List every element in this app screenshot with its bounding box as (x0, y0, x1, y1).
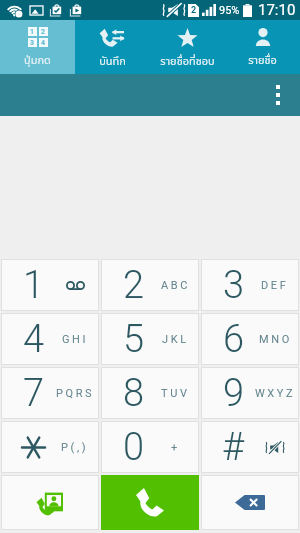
button[interactable]: P(,) (2, 422, 98, 472)
staticText: บันทึก (99, 53, 126, 68)
staticText: 6 (223, 317, 245, 362)
staticText: P(,) (61, 441, 89, 454)
button[interactable]: # (202, 422, 298, 472)
button[interactable]: 2 (102, 260, 198, 310)
button[interactable]: Delete (202, 476, 298, 529)
staticText: PQRS (56, 387, 95, 400)
staticText: 1 (30, 28, 35, 36)
button[interactable]: 9 (202, 368, 298, 418)
staticText: ปุ่มกด (24, 52, 51, 67)
button[interactable]: Add to contacts (2, 476, 98, 529)
staticText: + (171, 441, 180, 454)
staticText: DEF (261, 279, 289, 292)
staticText: 1 (23, 263, 45, 308)
staticText: 9 (223, 371, 245, 416)
button[interactable]: 6 (202, 314, 298, 364)
button[interactable]: 3 (202, 260, 298, 310)
staticText: ABC (161, 279, 190, 292)
staticText: รายชื่อ (248, 52, 277, 67)
staticText: 17:10 (258, 1, 296, 19)
staticText: 2 (41, 28, 46, 36)
staticText: 2 (123, 263, 145, 308)
staticText: 3 (223, 263, 245, 308)
staticText: 5 (123, 317, 145, 362)
staticText: 95% (219, 4, 240, 17)
staticText: MNO (259, 333, 292, 346)
button[interactable]: 0 (102, 422, 198, 472)
staticText: GHI (62, 333, 89, 346)
button[interactable]: รายชื่อที่ชอบ (150, 20, 225, 74)
button[interactable]: 8 (102, 368, 198, 418)
button[interactable]: 4 (2, 314, 98, 364)
staticText: รายชื่อที่ชอบ (160, 53, 215, 68)
staticText: 8 (123, 371, 145, 416)
staticText: 4 (23, 317, 45, 362)
staticText: JKL (162, 333, 189, 346)
button[interactable]: 1 (2, 260, 98, 310)
button[interactable]: 1 (0, 20, 75, 74)
button[interactable]: Call (101, 475, 199, 530)
button[interactable]: More options (256, 74, 300, 116)
staticText: 0 (123, 425, 145, 470)
button[interactable]: รายชื่อ (225, 20, 300, 74)
button[interactable]: บันทึก (75, 20, 150, 74)
staticText: 3 (30, 39, 35, 47)
staticText: 2 (191, 5, 197, 16)
button[interactable]: 7 (2, 368, 98, 418)
staticText: TUV (161, 387, 190, 400)
staticText: # (222, 425, 245, 470)
staticText: WXYZ (255, 387, 296, 400)
staticText: 7 (23, 371, 45, 416)
button[interactable]: 5 (102, 314, 198, 364)
staticText: 4 (41, 39, 46, 47)
